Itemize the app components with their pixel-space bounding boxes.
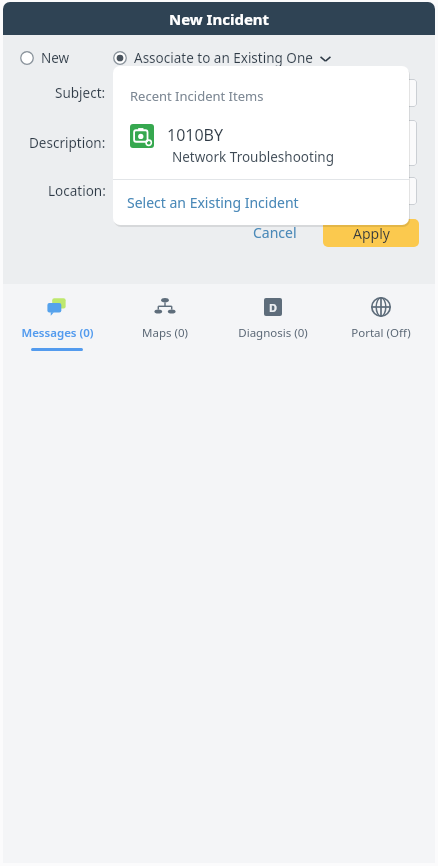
staticText: D — [269, 300, 278, 315]
staticText: Description: — [29, 134, 106, 152]
button[interactable]: Cancel — [243, 217, 307, 248]
staticText: Apply — [353, 224, 390, 243]
staticText: Portal (Off) — [351, 325, 411, 341]
staticText: Associate to an Existing One — [134, 49, 313, 67]
button[interactable] — [114, 79, 417, 107]
button[interactable]: Messages — [3, 284, 111, 358]
staticText: Recent Incident Items — [130, 87, 264, 105]
staticText: New — [41, 49, 70, 67]
staticText: Location: — [48, 182, 106, 200]
button[interactable]: Diagnosis — [219, 284, 327, 358]
button[interactable] — [114, 177, 417, 205]
other: Maps — [153, 295, 177, 319]
staticText: Messages (0) — [21, 325, 94, 341]
staticText: Network Troubleshooting — [172, 148, 335, 166]
staticText: Diagnosis (0) — [238, 325, 308, 341]
button[interactable]: 1010BY — [113, 122, 409, 172]
staticText: Cancel — [253, 223, 297, 242]
button[interactable]: Maps — [111, 284, 219, 358]
other: Portal — [371, 297, 391, 317]
staticText: Maps (0) — [142, 325, 188, 341]
other: Diagnosis — [264, 298, 282, 316]
button[interactable]: Apply — [323, 219, 419, 247]
button[interactable]: Associate to an Existing One — [113, 49, 332, 67]
staticText: New Incident — [169, 9, 270, 29]
button[interactable]: New — [20, 49, 70, 67]
button[interactable]: Portal — [327, 284, 435, 358]
other: Messages — [45, 295, 69, 319]
staticText: Select an Existing Incident — [127, 193, 299, 212]
button[interactable]: Select an Existing Incident — [113, 180, 409, 225]
button[interactable] — [114, 120, 417, 166]
staticText: 1010BY — [167, 124, 224, 146]
staticText: Subject: — [55, 84, 106, 102]
